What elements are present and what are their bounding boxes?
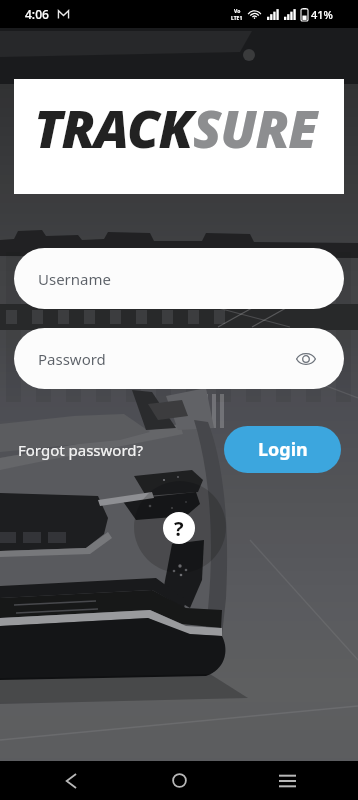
button[interactable]: Forgot password? — [18, 432, 144, 468]
staticText: Password — [38, 349, 106, 369]
button[interactable]: Recent apps — [233, 761, 341, 800]
staticText: ? — [174, 515, 184, 542]
staticText: Vo — [234, 8, 241, 15]
staticText: 4:06 — [25, 6, 49, 22]
staticText: Login — [258, 437, 308, 462]
staticText: LTE1 — [231, 15, 243, 22]
staticText: TRACK — [34, 92, 193, 163]
staticText: 41% — [311, 7, 333, 22]
staticText: Username — [38, 269, 111, 289]
button[interactable]: Back — [17, 761, 125, 800]
button[interactable]: Password — [14, 328, 344, 389]
button[interactable]: Show password — [292, 345, 320, 373]
staticText: Forgot password? — [18, 440, 144, 460]
button[interactable]: Username — [14, 248, 344, 309]
button[interactable]: Login — [224, 426, 341, 473]
button[interactable]: Home — [125, 761, 233, 800]
staticText: SURE — [193, 92, 317, 163]
button[interactable]: Help — [163, 512, 195, 544]
